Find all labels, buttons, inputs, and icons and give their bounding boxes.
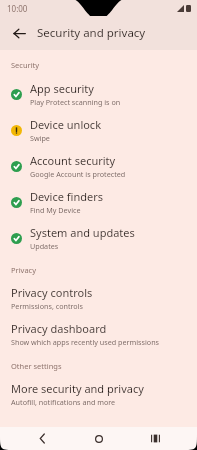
staticText: Swipe bbox=[30, 133, 50, 143]
staticText: Show which apps recently used permission… bbox=[11, 337, 160, 347]
staticText: More security and privacy bbox=[11, 381, 144, 396]
button[interactable]: Privacy controls bbox=[0, 280, 197, 316]
staticText: Autofill, notifications and more bbox=[11, 397, 116, 407]
staticText: Privacy bbox=[11, 265, 37, 275]
button[interactable]: Privacy dashboard bbox=[0, 316, 197, 352]
button[interactable]: Device unlock bbox=[0, 112, 197, 148]
staticText: Permissions, controls bbox=[11, 301, 84, 311]
button[interactable]: System and updates bbox=[0, 220, 197, 256]
staticText: Privacy dashboard bbox=[11, 321, 107, 336]
button[interactable]: Back bbox=[27, 427, 57, 450]
staticText: App security bbox=[30, 81, 94, 96]
staticText: Find My Device bbox=[30, 205, 81, 215]
button[interactable]: Back bbox=[6, 20, 32, 46]
staticText: 10:00 bbox=[7, 3, 28, 14]
staticText: Other settings bbox=[11, 361, 62, 371]
staticText: Account security bbox=[30, 153, 116, 168]
staticText: System and updates bbox=[30, 225, 135, 240]
button[interactable]: Home bbox=[84, 427, 114, 450]
staticText: Security and privacy bbox=[37, 25, 146, 41]
staticText: Device finders bbox=[30, 189, 103, 204]
button[interactable]: Account security bbox=[0, 148, 197, 184]
staticText: Updates bbox=[30, 241, 59, 251]
button[interactable]: App security bbox=[0, 76, 197, 112]
staticText: Security bbox=[11, 60, 40, 70]
staticText: Google Account is protected bbox=[30, 169, 126, 179]
button[interactable]: Recents bbox=[140, 427, 170, 450]
staticText: Play Protect scanning is on bbox=[30, 97, 121, 107]
button[interactable]: More security and privacy bbox=[0, 376, 197, 412]
staticText: Device unlock bbox=[30, 117, 102, 132]
staticText: Privacy controls bbox=[11, 285, 93, 300]
button[interactable]: Device finders bbox=[0, 184, 197, 220]
